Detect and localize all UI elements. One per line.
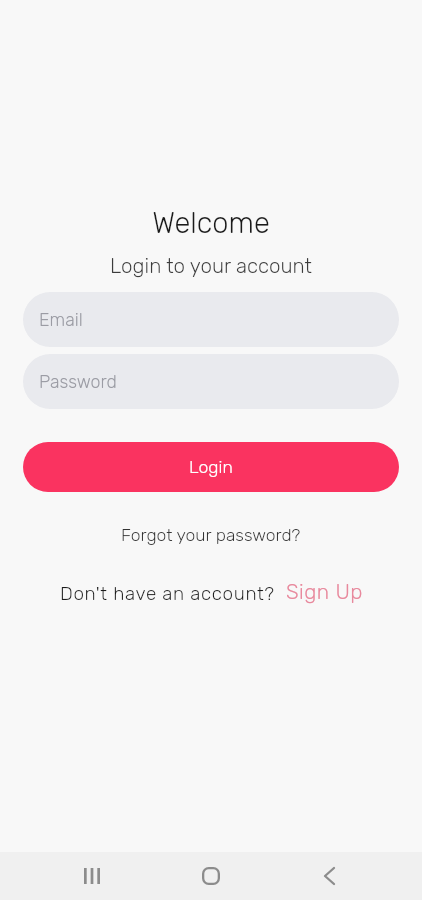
button[interactable]: Back	[270, 852, 389, 900]
button[interactable]: Recent apps	[33, 852, 151, 900]
button[interactable]: Forgot your password?	[115, 522, 307, 549]
staticText: Email	[39, 309, 83, 330]
button[interactable]: Login	[23, 442, 399, 492]
button[interactable]: Home	[151, 852, 270, 900]
staticText: Password	[39, 371, 117, 392]
staticText: Don't have an account?	[60, 582, 275, 604]
staticText: Welcome	[0, 206, 422, 240]
staticText: Login to your account	[0, 254, 422, 278]
button[interactable]: Sign Up	[286, 579, 363, 604]
staticText: Login	[189, 457, 233, 478]
button[interactable]: Email	[23, 292, 399, 347]
button[interactable]: Password	[23, 354, 399, 409]
